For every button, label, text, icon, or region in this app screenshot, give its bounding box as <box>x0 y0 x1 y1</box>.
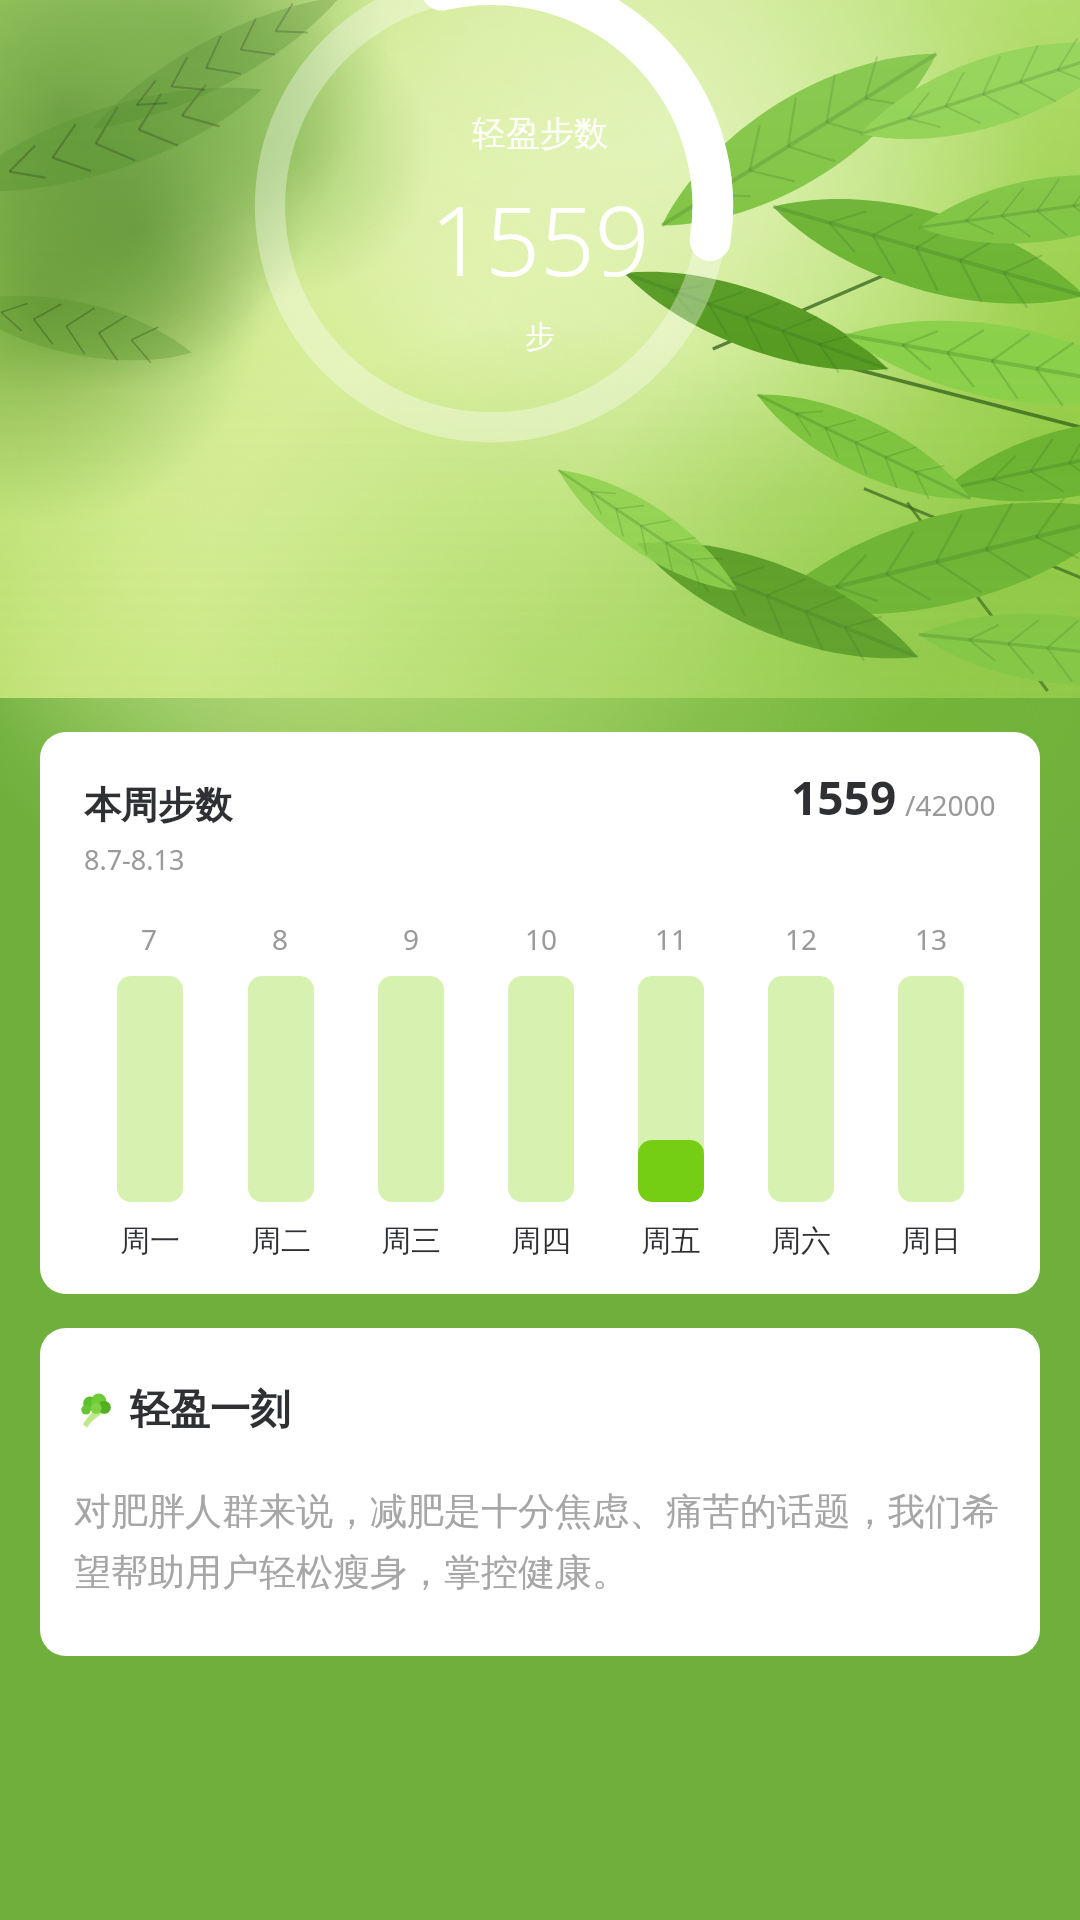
staticText: 周日 <box>901 1222 961 1260</box>
staticText: 13 <box>915 920 948 958</box>
staticText: 本周步数 <box>84 782 232 829</box>
staticText: 8.7-8.13 <box>84 841 185 878</box>
button[interactable] <box>898 976 964 1202</box>
staticText: 9 <box>403 920 420 958</box>
button[interactable]: 本周步数 <box>40 732 1040 1294</box>
staticText: 1559 <box>430 173 650 304</box>
staticText: 周一 <box>120 1222 180 1260</box>
staticText: 周二 <box>251 1222 311 1260</box>
other: Leafy greens <box>74 1389 114 1429</box>
staticText: 对肥胖人群来说，减肥是十分焦虑、痛苦的话题，我们希望帮助用户轻松瘦身，掌控健康。 <box>74 1488 1006 1596</box>
staticText: /42000 <box>905 786 996 824</box>
staticText: 周四 <box>511 1222 571 1260</box>
staticText: 轻盈一刻 <box>130 1384 290 1434</box>
staticText: 11 <box>655 920 688 958</box>
button[interactable]: Leafy greens <box>40 1328 1040 1656</box>
staticText: 步 <box>525 318 555 356</box>
staticText: 周六 <box>771 1222 831 1260</box>
staticText: 12 <box>785 920 818 958</box>
staticText: 10 <box>525 920 558 958</box>
button[interactable] <box>117 976 183 1202</box>
button[interactable] <box>248 976 314 1202</box>
staticText: 7 <box>141 920 158 958</box>
button[interactable] <box>638 976 704 1202</box>
staticText: 轻盈步数 <box>472 112 608 155</box>
staticText: 周五 <box>641 1222 701 1260</box>
staticText: 1559 <box>791 766 897 829</box>
button[interactable] <box>378 976 444 1202</box>
staticText: 8 <box>272 920 289 958</box>
staticText: 周三 <box>381 1222 441 1260</box>
button[interactable] <box>508 976 574 1202</box>
button[interactable] <box>768 976 834 1202</box>
